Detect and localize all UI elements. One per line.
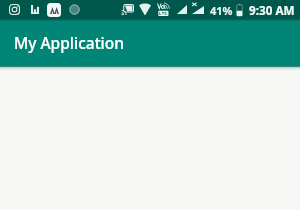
other: Battery 41 percent [236, 4, 243, 16]
other: VoLTE [157, 2, 170, 17]
other: Screen cast [121, 4, 134, 15]
staticText: 9:30 AM [249, 2, 295, 18]
other: App notification [47, 3, 61, 17]
other: Wi-Fi [139, 4, 151, 15]
other: Camera notification [9, 4, 20, 15]
button[interactable]: Camera notification [0, 0, 300, 66]
other: Mobile signal [177, 5, 187, 14]
staticText: 41% [210, 3, 233, 18]
other: Notification [69, 4, 80, 15]
other: Data usage [31, 5, 39, 14]
other: No SIM signal [192, 3, 204, 14]
staticText: My Application [14, 32, 124, 53]
